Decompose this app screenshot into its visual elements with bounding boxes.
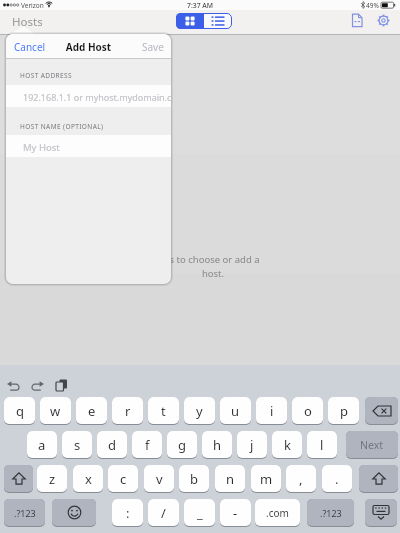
staticText: My Host (23, 141, 60, 154)
button[interactable]: q (4, 397, 35, 425)
button[interactable] (52, 499, 96, 527)
staticText: k (284, 436, 291, 454)
button[interactable]: w (40, 397, 71, 425)
staticText: l (320, 436, 324, 454)
button[interactable] (359, 465, 398, 493)
button[interactable]: s (62, 431, 92, 459)
staticText: / (161, 504, 166, 522)
staticText: a (38, 436, 46, 454)
button[interactable]: k (272, 431, 302, 459)
staticText: Cancel (14, 40, 46, 54)
staticText: hosts to choose or add a (150, 253, 260, 266)
staticText: .com (266, 506, 289, 520)
staticText: n (226, 470, 235, 488)
staticText: w (50, 402, 61, 420)
button[interactable]: : (112, 499, 143, 527)
button[interactable] (4, 465, 33, 493)
staticText: m (260, 470, 273, 488)
button[interactable]: Hosts (10, 13, 40, 29)
staticText: t (161, 402, 166, 420)
button[interactable]: b (179, 465, 209, 493)
button[interactable]: n (215, 465, 245, 493)
button[interactable]: - (220, 499, 251, 527)
button[interactable]: Save (136, 37, 168, 55)
button[interactable]: r (112, 397, 143, 425)
staticText: q (16, 402, 24, 420)
staticText: h (213, 436, 222, 454)
staticText: s (74, 436, 81, 454)
button[interactable]: o (292, 397, 323, 425)
staticText: o (304, 402, 312, 420)
staticText: 7:37 AM (170, 1, 230, 10)
staticText: r (125, 402, 131, 420)
staticText: x (85, 470, 92, 488)
staticText: .?123 (320, 507, 342, 519)
button[interactable] (204, 13, 232, 29)
button[interactable]: 192.168.1.1 or myhost.mydomain.c... (6, 85, 171, 107)
staticText: g (178, 436, 186, 454)
button[interactable]: My Host (6, 135, 171, 157)
button[interactable]: g (167, 431, 197, 459)
button[interactable] (365, 397, 398, 425)
staticText: i (270, 402, 274, 420)
button[interactable]: Next (346, 431, 398, 459)
staticText: d (108, 436, 116, 454)
button[interactable]: h (202, 431, 232, 459)
staticText: .?123 (14, 507, 36, 519)
staticText: y (196, 402, 203, 420)
button[interactable] (365, 499, 397, 527)
staticText: Next (360, 438, 384, 452)
staticText: , (299, 470, 303, 488)
staticText: Save (142, 40, 164, 54)
button[interactable] (377, 14, 390, 27)
button[interactable]: m (251, 465, 281, 493)
staticText: _ (197, 504, 203, 522)
button[interactable]: x (73, 465, 103, 493)
staticText: 49% (366, 1, 379, 10)
button[interactable]: / (148, 499, 179, 527)
button[interactable]: . (322, 465, 352, 493)
staticText: . (335, 470, 339, 488)
staticText: HOST ADDRESS (20, 71, 73, 80)
staticText: j (250, 436, 254, 454)
staticText: b (190, 470, 198, 488)
button[interactable]: t (148, 397, 179, 425)
button[interactable]: a (27, 431, 57, 459)
button[interactable]: c (108, 465, 138, 493)
button[interactable]: v (144, 465, 174, 493)
button[interactable]: y (184, 397, 215, 425)
staticText: e (88, 402, 96, 420)
button[interactable]: u (220, 397, 251, 425)
staticText: f (145, 436, 150, 454)
staticText: 192.168.1.1 or myhost.mydomain.c... (23, 91, 171, 103)
button[interactable] (176, 13, 204, 29)
staticText: host. (160, 267, 266, 280)
staticText: v (156, 470, 163, 488)
staticText: z (49, 470, 56, 488)
button[interactable]: j (237, 431, 267, 459)
button[interactable]: p (328, 397, 359, 425)
button[interactable] (350, 13, 365, 28)
button[interactable]: .?123 (307, 499, 354, 527)
staticText: Verizon (21, 1, 44, 10)
button[interactable]: .com (255, 499, 300, 527)
button[interactable]: Cancel (10, 37, 54, 55)
staticText: Hosts (12, 14, 42, 30)
staticText: c (120, 470, 127, 488)
button[interactable]: f (132, 431, 162, 459)
staticText: : (126, 504, 130, 522)
staticText: Add Host (6, 40, 171, 54)
staticText: p (340, 402, 348, 420)
button[interactable]: l (307, 431, 337, 459)
button[interactable]: .?123 (4, 499, 45, 527)
button[interactable]: d (97, 431, 127, 459)
button[interactable]: e (76, 397, 107, 425)
button[interactable]: i (256, 397, 287, 425)
button[interactable]: z (37, 465, 67, 493)
staticText: u (231, 402, 240, 420)
staticText: HOST NAME (OPTIONAL) (20, 122, 104, 131)
staticText: - (233, 504, 238, 522)
button[interactable]: , (286, 465, 316, 493)
button[interactable]: _ (184, 499, 215, 527)
